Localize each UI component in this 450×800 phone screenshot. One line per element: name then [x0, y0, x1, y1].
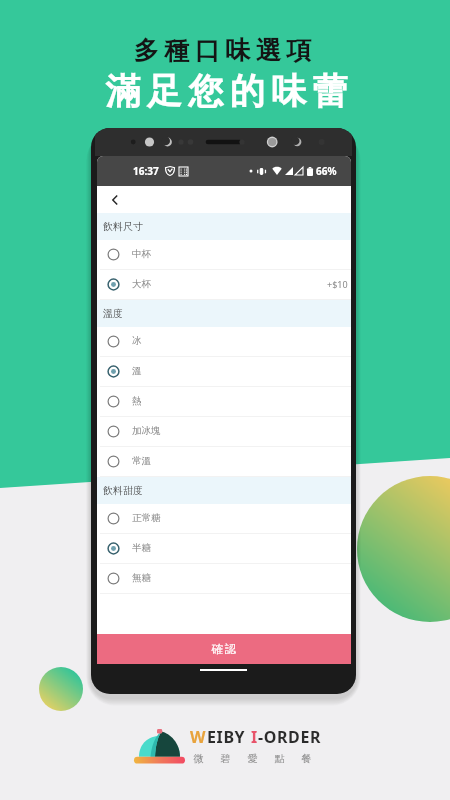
button[interactable]: 常溫: [97, 447, 351, 477]
staticText: 常溫: [132, 455, 151, 467]
staticText: 微碧愛點餐: [185, 752, 320, 765]
staticText: W: [190, 726, 207, 748]
staticText: 冰: [132, 335, 142, 347]
button[interactable]: 熱: [97, 387, 351, 417]
staticText: I: [251, 726, 258, 748]
button[interactable]: 溫: [97, 357, 351, 387]
staticText: 確認: [211, 642, 237, 656]
staticText: 滿足您的味蕾: [102, 69, 351, 113]
staticText: 66%: [316, 164, 337, 178]
button[interactable]: 中杯: [97, 240, 351, 270]
staticText: -ORDER: [258, 726, 322, 748]
staticText: EIBY: [207, 726, 251, 748]
staticText: 16:37: [133, 164, 159, 178]
button[interactable]: 冰: [97, 327, 351, 357]
button[interactable]: 確認: [97, 634, 351, 664]
staticText: 正常糖: [132, 512, 161, 524]
button[interactable]: 加冰塊: [97, 417, 351, 447]
staticText: 溫度: [103, 307, 123, 320]
staticText: 溫: [132, 365, 142, 377]
staticText: 飲料甜度: [103, 484, 143, 497]
staticText: 無糖: [132, 572, 151, 584]
staticText: 大杯: [132, 278, 151, 290]
staticText: 半糖: [132, 542, 151, 554]
staticText: 多種口味選項: [131, 35, 314, 66]
staticText: 飲料尺寸: [103, 220, 143, 233]
staticText: +$10: [327, 278, 348, 290]
staticText: 加冰塊: [132, 425, 161, 437]
staticText: 中杯: [132, 248, 151, 260]
button[interactable]: 正常糖: [97, 504, 351, 534]
staticText: 熱: [132, 395, 142, 407]
button[interactable]: 大杯: [97, 270, 351, 300]
button[interactable]: 半糖: [97, 534, 351, 564]
button[interactable]: Back: [105, 190, 125, 210]
button[interactable]: 無糖: [97, 564, 351, 594]
